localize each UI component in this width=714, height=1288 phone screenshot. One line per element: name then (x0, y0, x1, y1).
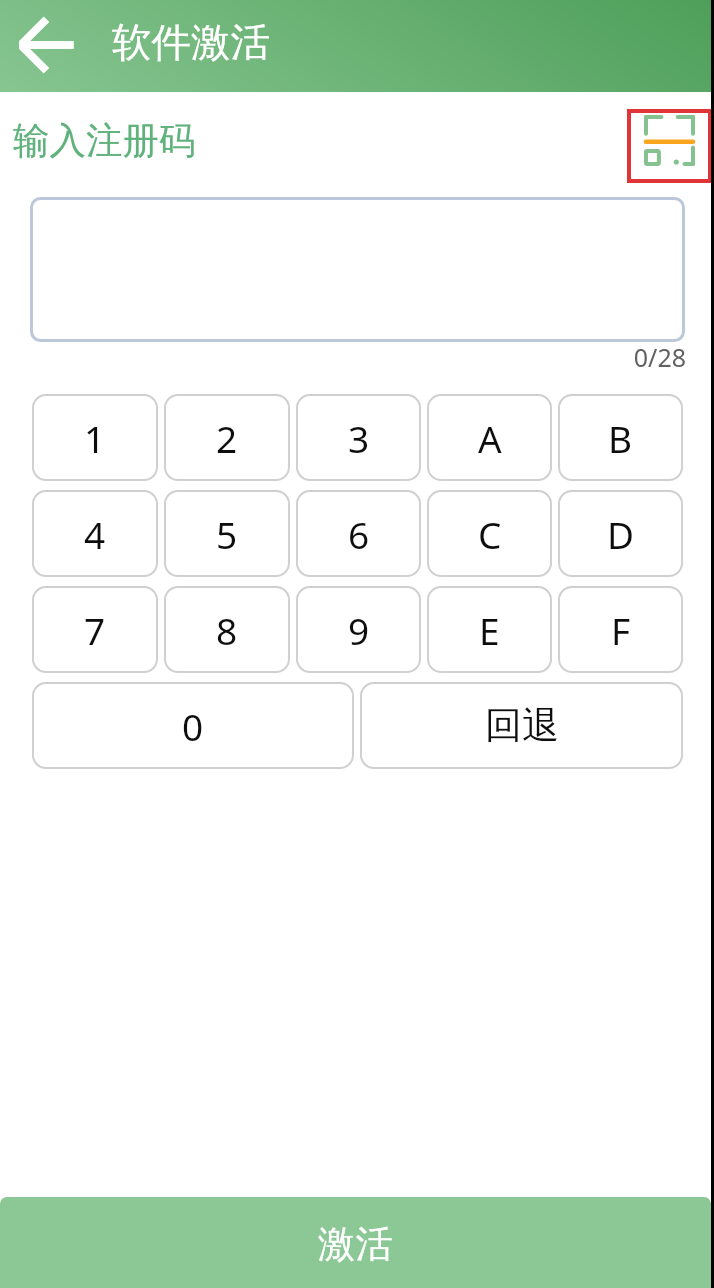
button[interactable]: 7 (32, 586, 158, 673)
staticText: 7 (84, 605, 106, 655)
button[interactable]: A (427, 394, 552, 481)
staticText: 2 (216, 413, 238, 463)
button[interactable]: Back (0, 0, 92, 92)
button[interactable]: C (427, 490, 552, 577)
staticText: A (478, 413, 502, 463)
button[interactable]: D (558, 490, 683, 577)
button[interactable]: 3 (296, 394, 421, 481)
button[interactable]: Scan QR code (627, 109, 712, 183)
button[interactable]: 1 (32, 394, 158, 481)
staticText: 4 (84, 509, 106, 559)
staticText: 0/28 (586, 340, 686, 374)
button[interactable]: 4 (32, 490, 158, 577)
staticText: 0 (182, 701, 204, 751)
staticText: 6 (348, 509, 370, 559)
button[interactable]: 激活 (0, 1197, 711, 1288)
button[interactable]: 2 (164, 394, 290, 481)
staticText: 3 (348, 413, 370, 463)
staticText: F (611, 605, 631, 655)
staticText: 8 (216, 605, 238, 655)
button[interactable]: B (558, 394, 683, 481)
button[interactable]: F (558, 586, 683, 673)
staticText: 5 (216, 509, 238, 559)
button[interactable]: E (427, 586, 552, 673)
button[interactable]: 9 (296, 586, 421, 673)
button[interactable]: 8 (164, 586, 290, 673)
button[interactable]: 回退 (360, 682, 683, 769)
button[interactable]: 0 (32, 682, 354, 769)
staticText: 9 (348, 605, 370, 655)
staticText: 输入注册码 (13, 118, 196, 164)
staticText: D (607, 509, 635, 559)
staticText: 1 (84, 413, 106, 463)
staticText: E (479, 605, 500, 655)
staticText: C (478, 509, 502, 559)
staticText: 回退 (485, 702, 559, 749)
staticText: 软件激活 (112, 18, 270, 68)
staticText: 激活 (318, 1221, 393, 1268)
staticText: B (608, 413, 633, 463)
button[interactable]: 6 (296, 490, 421, 577)
button[interactable]: 5 (164, 490, 290, 577)
